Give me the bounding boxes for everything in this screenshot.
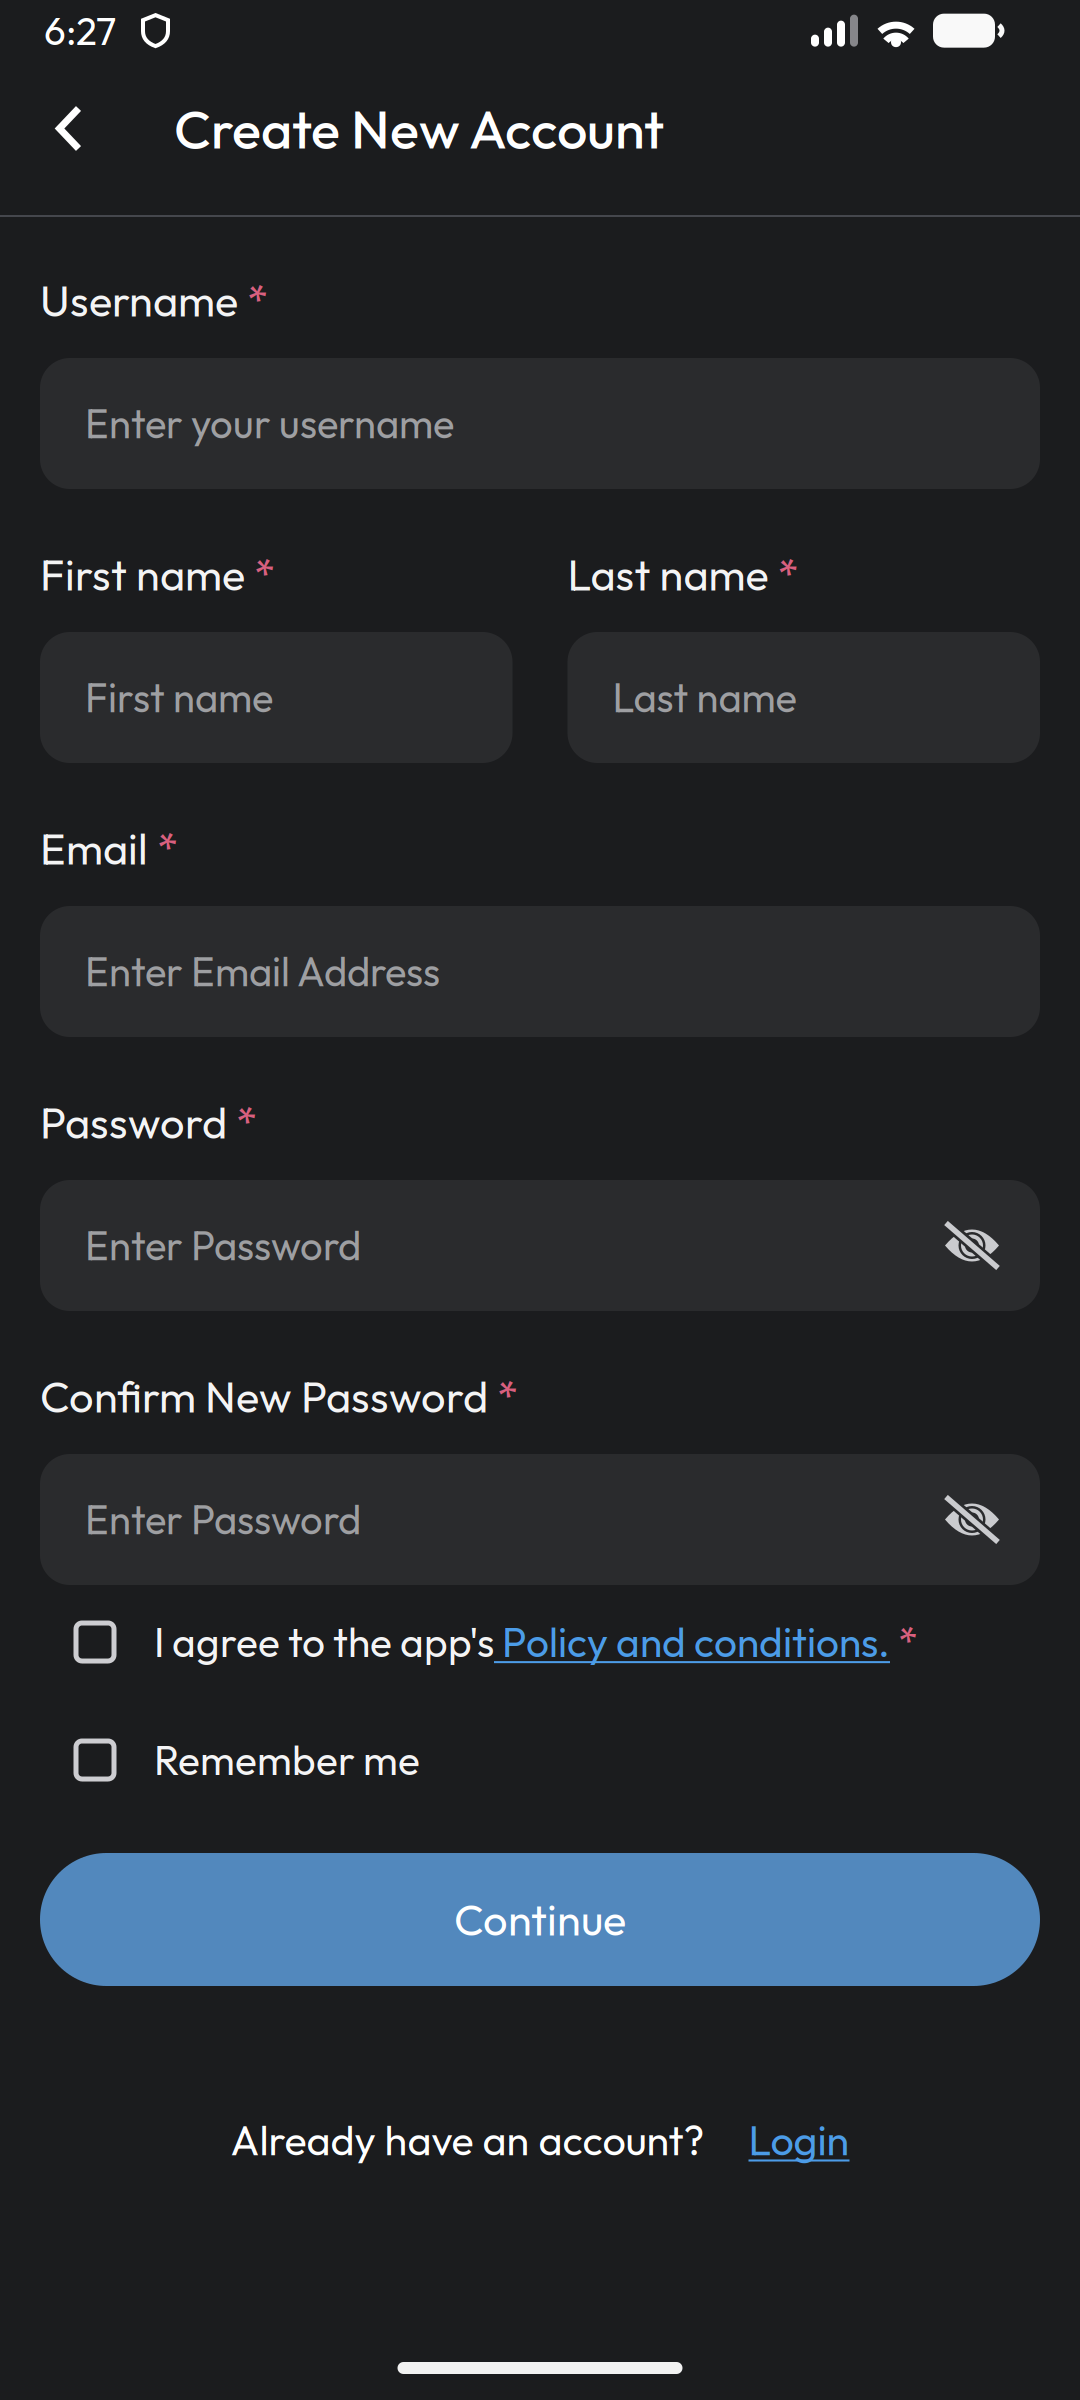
staticText: Enter your username bbox=[85, 398, 454, 449]
button[interactable]: Show password bbox=[944, 1225, 1000, 1265]
staticText: Last name bbox=[612, 672, 796, 723]
button[interactable]: Login bbox=[704, 2114, 849, 2166]
button[interactable]: I agree to the app's bbox=[40, 1604, 1040, 1680]
staticText: 6:27 bbox=[44, 6, 116, 55]
staticText: Confirm New Password bbox=[40, 1369, 488, 1424]
button[interactable]: Remember me bbox=[40, 1722, 1040, 1798]
staticText: * bbox=[227, 1095, 257, 1150]
staticText: * bbox=[890, 1616, 918, 1668]
button[interactable]: Show password bbox=[944, 1499, 1000, 1539]
staticText: Username bbox=[40, 273, 238, 328]
button[interactable]: Continue bbox=[40, 1853, 1040, 1986]
button[interactable]: Back bbox=[26, 78, 112, 178]
staticText: * bbox=[238, 273, 268, 328]
staticText: Login bbox=[748, 2114, 849, 2166]
staticText: Remember me bbox=[154, 1734, 420, 1786]
staticText: Enter Email Address bbox=[85, 946, 440, 997]
staticText: First name bbox=[40, 547, 245, 602]
staticText: Enter Password bbox=[85, 1220, 361, 1271]
staticText: First name bbox=[85, 672, 273, 723]
staticText: * bbox=[768, 547, 798, 602]
staticText: Email bbox=[40, 821, 148, 876]
staticText: Password bbox=[40, 1095, 227, 1150]
staticText: Create New Account bbox=[174, 94, 664, 162]
staticText: Policy and conditions. bbox=[494, 1616, 890, 1668]
staticText: Enter Password bbox=[85, 1494, 361, 1545]
staticText: * bbox=[148, 821, 178, 876]
staticText: Continue bbox=[454, 1892, 626, 1947]
staticText: Last name bbox=[567, 547, 768, 602]
staticText: Already have an account? bbox=[230, 2114, 704, 2166]
staticText: I agree to the app's bbox=[154, 1616, 494, 1668]
staticText: * bbox=[488, 1369, 518, 1424]
staticText: * bbox=[245, 547, 275, 602]
